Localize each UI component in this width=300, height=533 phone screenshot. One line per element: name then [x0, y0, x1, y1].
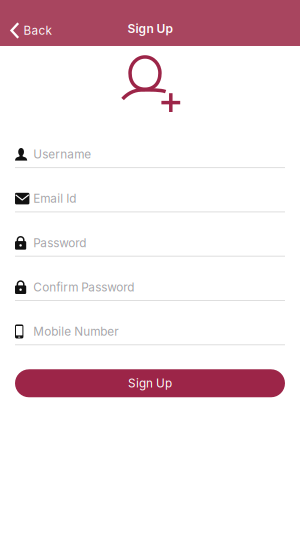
- button[interactable]: Mobile Number: [15, 301, 285, 345]
- staticText: Password: [33, 236, 86, 250]
- staticText: Sign Up: [127, 21, 172, 36]
- staticText: Email Id: [33, 191, 76, 206]
- staticText: Username: [33, 147, 91, 161]
- button[interactable]: Sign Up: [15, 369, 285, 397]
- button[interactable]: Username: [15, 124, 285, 168]
- button[interactable]: Back: [0, 6, 62, 46]
- staticText: Sign Up: [128, 376, 172, 390]
- staticText: Confirm Password: [33, 280, 134, 294]
- button[interactable]: Confirm Password: [15, 257, 285, 301]
- staticText: Mobile Number: [33, 324, 118, 339]
- staticText: Back: [24, 23, 52, 38]
- button[interactable]: Email Id: [15, 168, 285, 212]
- button[interactable]: Password: [15, 212, 285, 257]
